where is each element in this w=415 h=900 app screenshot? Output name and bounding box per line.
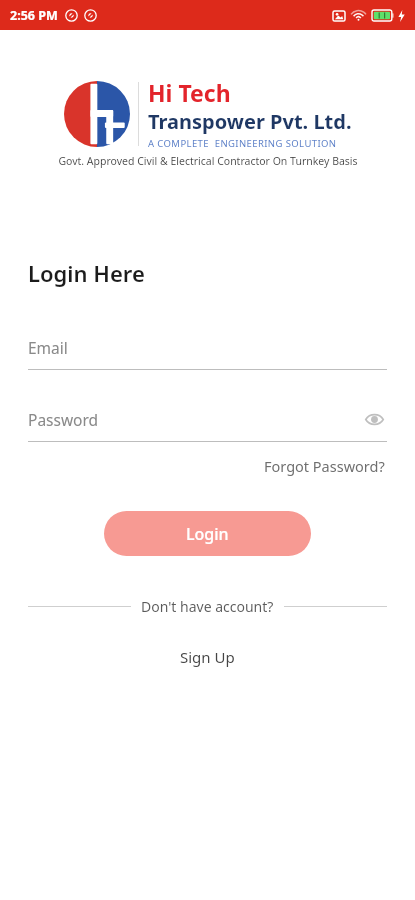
staticText: Hi Tech	[148, 77, 231, 108]
button[interactable]: Password	[28, 406, 387, 442]
staticText: Don't have account?	[141, 597, 274, 616]
staticText: Sign Up	[180, 647, 235, 667]
staticText: Govt. Approved Civil & Electrical Contra…	[58, 154, 358, 168]
button[interactable]: Show password	[361, 406, 387, 432]
staticText: Forgot Password?	[264, 456, 385, 476]
button[interactable]: Forgot Password?	[262, 453, 387, 479]
staticText: A COMPLETE ENGINEERING SOLUTION	[148, 137, 337, 150]
button[interactable]: Login	[104, 511, 311, 556]
button[interactable]: Sign Up	[170, 643, 245, 671]
staticText: Email	[28, 337, 68, 358]
staticText: Login	[186, 523, 229, 545]
button[interactable]: Email	[28, 334, 387, 370]
staticText: Password	[28, 409, 99, 430]
staticText: 2:56 PM	[10, 7, 58, 24]
staticText: Login Here	[28, 258, 145, 288]
staticText: Transpower Pvt. Ltd.	[148, 108, 352, 135]
